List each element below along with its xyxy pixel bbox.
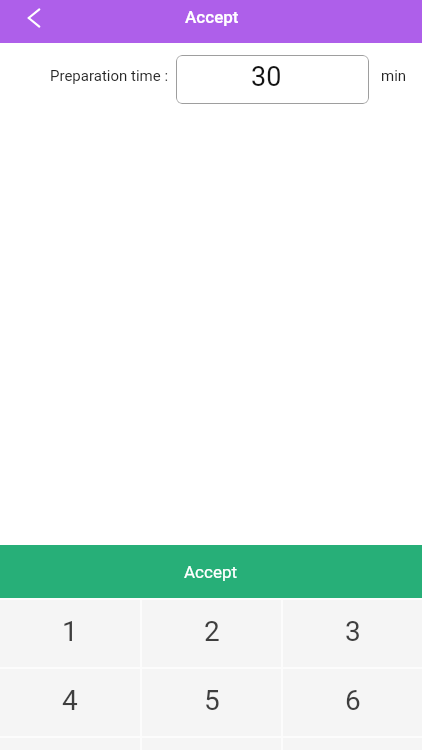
staticText: 6 [345, 684, 361, 717]
staticText: 30 [251, 61, 282, 93]
button[interactable]: 5 [142, 669, 281, 736]
staticText: 2 [204, 615, 220, 648]
staticText: min [381, 67, 407, 85]
button[interactable]: 3 [283, 600, 422, 667]
staticText: 4 [62, 684, 78, 717]
staticText: 5 [204, 684, 220, 717]
staticText: Preparation time : [50, 67, 169, 85]
button[interactable]: 30 [176, 55, 369, 104]
button[interactable]: Back [18, 2, 50, 34]
staticText: 1 [62, 615, 78, 648]
staticText: Accept [184, 562, 238, 582]
button[interactable]: 4 [0, 669, 140, 736]
button[interactable]: 1 [0, 600, 140, 667]
button[interactable]: 6 [283, 669, 422, 736]
button[interactable]: Accept [0, 545, 422, 598]
button[interactable]: 2 [142, 600, 281, 667]
staticText: 3 [345, 615, 361, 648]
staticText: Accept [185, 7, 239, 27]
